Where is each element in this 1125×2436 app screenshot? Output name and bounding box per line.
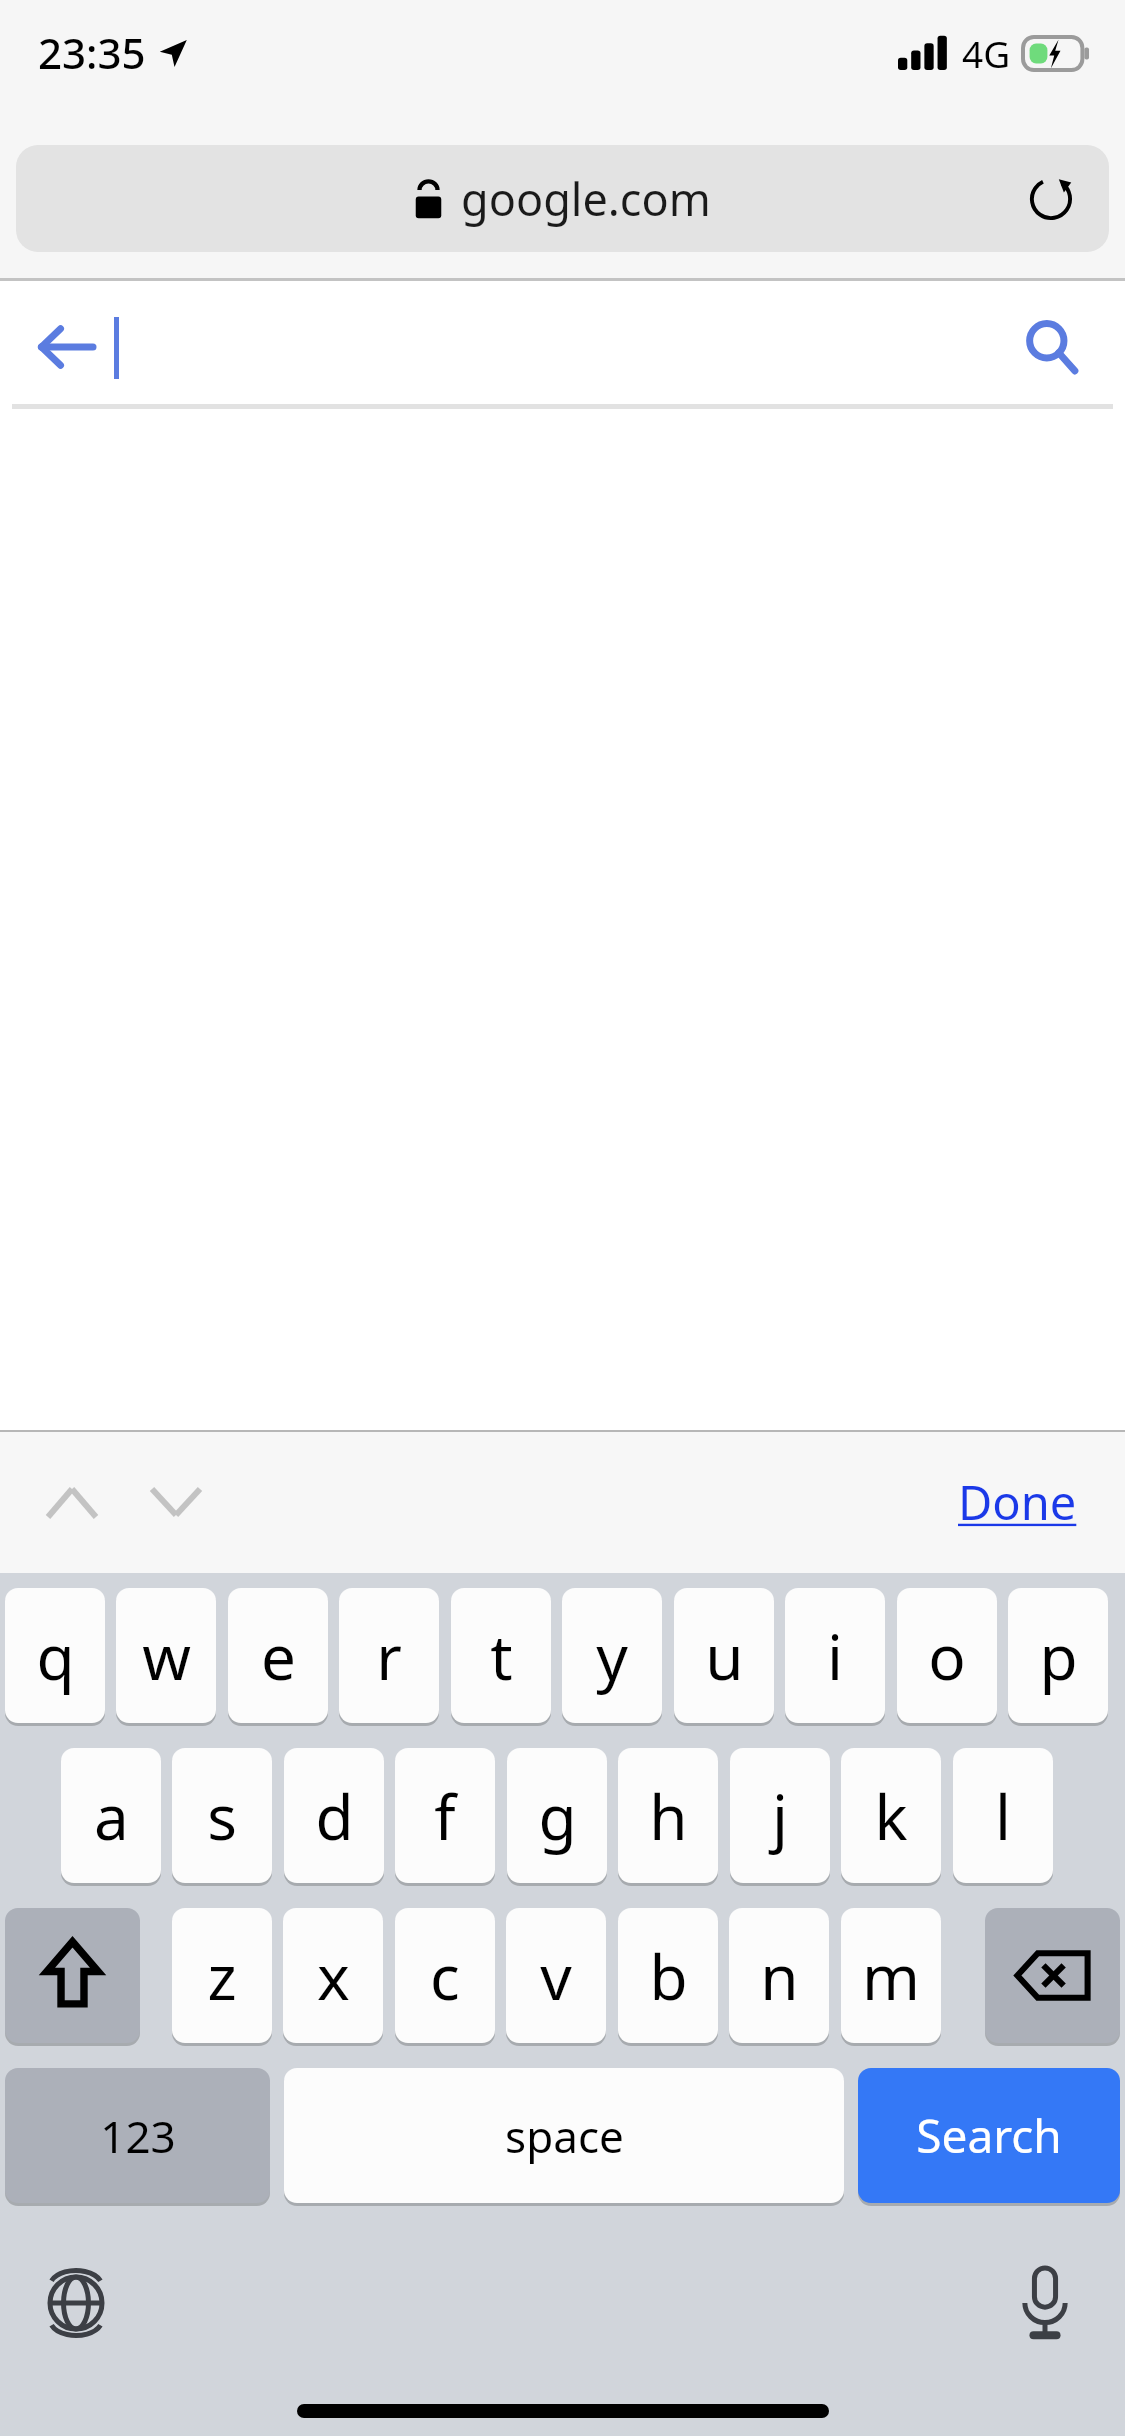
button[interactable]: space: [284, 2068, 844, 2203]
staticText: space: [505, 2106, 624, 2166]
staticText: o: [928, 1614, 966, 1698]
staticText: g: [538, 1774, 577, 1858]
button[interactable]: e: [228, 1588, 328, 1723]
button[interactable]: u: [674, 1588, 774, 1723]
staticText: google.com: [461, 168, 711, 229]
button[interactable]: Backspace: [985, 1908, 1120, 2043]
button[interactable]: z: [172, 1908, 272, 2043]
button[interactable]: Back: [20, 281, 110, 413]
staticText: b: [649, 1934, 688, 2018]
button[interactable]: i: [785, 1588, 885, 1723]
button[interactable]: v: [506, 1908, 606, 2043]
staticText: u: [705, 1614, 744, 1698]
staticText: a: [94, 1774, 129, 1858]
button[interactable]: b: [618, 1908, 718, 2043]
button[interactable]: google.com: [16, 145, 1109, 252]
button[interactable]: k: [841, 1748, 941, 1883]
staticText: q: [36, 1614, 75, 1698]
staticText: Done: [958, 1470, 1077, 1534]
staticText: i: [827, 1614, 843, 1698]
staticText: d: [315, 1774, 354, 1858]
button[interactable]: m: [841, 1908, 941, 2043]
button[interactable]: Search: [997, 292, 1107, 402]
staticText: h: [649, 1774, 688, 1858]
button[interactable]: Reload: [1015, 163, 1087, 235]
button[interactable]: n: [729, 1908, 829, 2043]
staticText: 4G: [962, 28, 1011, 78]
button[interactable]: Shift: [5, 1908, 140, 2043]
button[interactable]: Dictation: [995, 2253, 1095, 2353]
staticText: t: [490, 1614, 513, 1698]
staticText: Search: [916, 2104, 1062, 2167]
button[interactable]: t: [451, 1588, 551, 1723]
button[interactable]: q: [5, 1588, 105, 1723]
staticText: p: [1039, 1614, 1078, 1698]
button[interactable]: r: [339, 1588, 439, 1723]
button[interactable]: a: [61, 1748, 161, 1883]
staticText: 123: [100, 2106, 176, 2166]
staticText: v: [540, 1934, 572, 2018]
staticText: c: [430, 1934, 460, 2018]
button[interactable]: l: [953, 1748, 1053, 1883]
staticText: s: [207, 1774, 237, 1858]
button[interactable]: g: [507, 1748, 607, 1883]
staticText: x: [317, 1934, 350, 2018]
staticText: n: [760, 1934, 799, 2018]
staticText: e: [261, 1614, 296, 1698]
button[interactable]: f: [395, 1748, 495, 1883]
staticText: l: [995, 1774, 1011, 1858]
staticText: w: [142, 1614, 191, 1698]
button[interactable]: j: [730, 1748, 830, 1883]
button[interactable]: s: [172, 1748, 272, 1883]
button[interactable]: Search: [858, 2068, 1120, 2203]
staticText: k: [874, 1774, 908, 1858]
staticText: 23:35: [38, 24, 146, 81]
button[interactable]: o: [897, 1588, 997, 1723]
staticText: f: [434, 1774, 456, 1858]
staticText: m: [862, 1934, 920, 2018]
button[interactable]: p: [1008, 1588, 1108, 1723]
button[interactable]: Next field: [128, 1454, 224, 1550]
button[interactable]: c: [395, 1908, 495, 2043]
button[interactable]: Change keyboard: [26, 2253, 126, 2353]
staticText: j: [772, 1774, 788, 1858]
button[interactable]: y: [562, 1588, 662, 1723]
button[interactable]: Done: [952, 1456, 1083, 1548]
button[interactable]: w: [116, 1588, 216, 1723]
staticText: z: [207, 1934, 237, 2018]
staticText: r: [376, 1614, 402, 1698]
button[interactable]: x: [283, 1908, 383, 2043]
button[interactable]: 123: [5, 2068, 270, 2203]
staticText: y: [596, 1614, 628, 1698]
button[interactable]: Previous field: [24, 1454, 120, 1550]
button[interactable]: h: [618, 1748, 718, 1883]
button[interactable]: d: [284, 1748, 384, 1883]
